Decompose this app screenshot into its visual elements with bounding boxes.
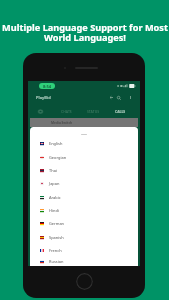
staticText: Media Switch <box>51 121 73 125</box>
staticText: French <box>49 248 62 253</box>
button[interactable]: CHATS <box>52 105 80 118</box>
staticText: PlayBid <box>36 95 51 100</box>
button[interactable]: Spanish <box>30 230 138 244</box>
staticText: STATUS <box>87 109 100 114</box>
button[interactable]: French <box>30 244 138 257</box>
button[interactable]: German <box>30 217 138 230</box>
staticText: Multiple Language Support for Most World… <box>2 21 168 44</box>
staticText: Spanish <box>49 235 64 240</box>
button[interactable]: Georgian <box>30 150 138 164</box>
staticText: Russian <box>49 259 64 264</box>
button[interactable]: More options <box>127 94 134 101</box>
button[interactable]: English <box>30 137 138 150</box>
button[interactable]: Search <box>115 94 122 101</box>
staticText: Hindi <box>49 208 59 213</box>
staticText: 8:54 <box>43 84 51 89</box>
staticText: CALLS <box>115 109 126 114</box>
button[interactable]: Thai <box>30 164 138 177</box>
staticText: English <box>49 141 63 146</box>
staticText: Arabic <box>49 195 61 200</box>
staticText: Japan <box>49 181 60 186</box>
button[interactable]: CALLS <box>107 105 134 118</box>
button[interactable]: Russian <box>30 257 138 266</box>
button[interactable]: Camera <box>28 105 52 118</box>
button[interactable]: Arabic <box>30 190 138 204</box>
button[interactable]: Back <box>108 94 115 101</box>
staticText: Georgian <box>49 155 67 160</box>
staticText: Thai <box>49 168 57 173</box>
staticText: German <box>49 221 65 226</box>
button[interactable]: Japan <box>30 177 138 190</box>
staticText: CHATS <box>61 109 72 114</box>
button[interactable]: STATUS <box>80 105 107 118</box>
button[interactable]: Hindi <box>30 204 138 217</box>
